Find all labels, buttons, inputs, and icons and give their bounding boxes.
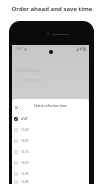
button[interactable]: 14:10 (12, 146, 89, 157)
button[interactable]: ASAP (12, 113, 89, 124)
staticText: ASAP (21, 117, 29, 121)
staticText: Select collection time (34, 104, 67, 108)
staticText: 12:07 (15, 47, 23, 51)
button[interactable]: 14:30 (12, 168, 89, 179)
button[interactable]: 14:20 (12, 157, 89, 168)
staticText: Checkout (15, 66, 41, 73)
button[interactable]: Close (13, 103, 20, 110)
button[interactable]: 13:50 (12, 124, 89, 135)
staticText: Collect from (21, 77, 42, 82)
staticText: 14:20 (21, 161, 29, 165)
staticText: 13:50 (21, 128, 29, 132)
staticText: 14:30 (21, 172, 29, 176)
button[interactable]: 14:40 (12, 179, 89, 184)
staticText: Order ahead and save time (0, 5, 104, 13)
staticText: 14:40 (21, 180, 29, 184)
staticText: 14:00 (21, 139, 29, 143)
button[interactable]: 14:00 (12, 135, 89, 146)
staticText: 14:10 (21, 150, 29, 154)
